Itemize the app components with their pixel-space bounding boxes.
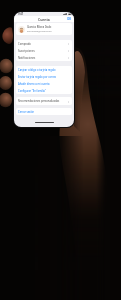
staticText: Añadir dinero a mi cuenta [18, 82, 50, 86]
button[interactable]: Enviar tarjeta regalo por correo electró… [16, 73, 72, 80]
staticText: 9:41 [18, 12, 24, 16]
staticText: Recomendaciones personalizadas [18, 99, 60, 103]
button[interactable]: Garcia Mora Italo [16, 23, 72, 35]
staticText: Enviar tarjeta regalo por correo electró… [18, 75, 70, 79]
staticText: › [68, 99, 70, 104]
staticText: Cuenta [38, 17, 50, 22]
staticText: OK [67, 17, 72, 21]
button[interactable]: Notificaciones [16, 54, 72, 61]
staticText: Canjear código o tarjeta regalo [18, 68, 56, 72]
staticText: italo.garcia@icloud.com [27, 30, 52, 33]
staticText: Cerrar sesión [18, 110, 35, 114]
button[interactable]: OK [65, 16, 74, 22]
staticText: Notificaciones [18, 56, 36, 60]
button[interactable]: Suscripciones [16, 47, 72, 54]
button[interactable]: Configurar "En familia" [16, 87, 72, 94]
staticText: › [68, 41, 70, 46]
button[interactable]: Añadir dinero a mi cuenta [16, 80, 72, 87]
button[interactable]: Comprado [16, 40, 72, 47]
button[interactable]: Canjear código o tarjeta regalo [16, 66, 72, 73]
button[interactable]: Recomendaciones personalizadas [16, 97, 72, 105]
staticText: › [68, 48, 70, 53]
staticText: › [68, 55, 70, 60]
staticText: Suscripciones [18, 49, 35, 53]
button[interactable]: Cerrar sesión [16, 108, 72, 115]
staticText: Configurar "En familia" [18, 89, 46, 93]
staticText: Garcia Mora Italo [27, 25, 52, 29]
staticText: Comprado [18, 42, 31, 46]
